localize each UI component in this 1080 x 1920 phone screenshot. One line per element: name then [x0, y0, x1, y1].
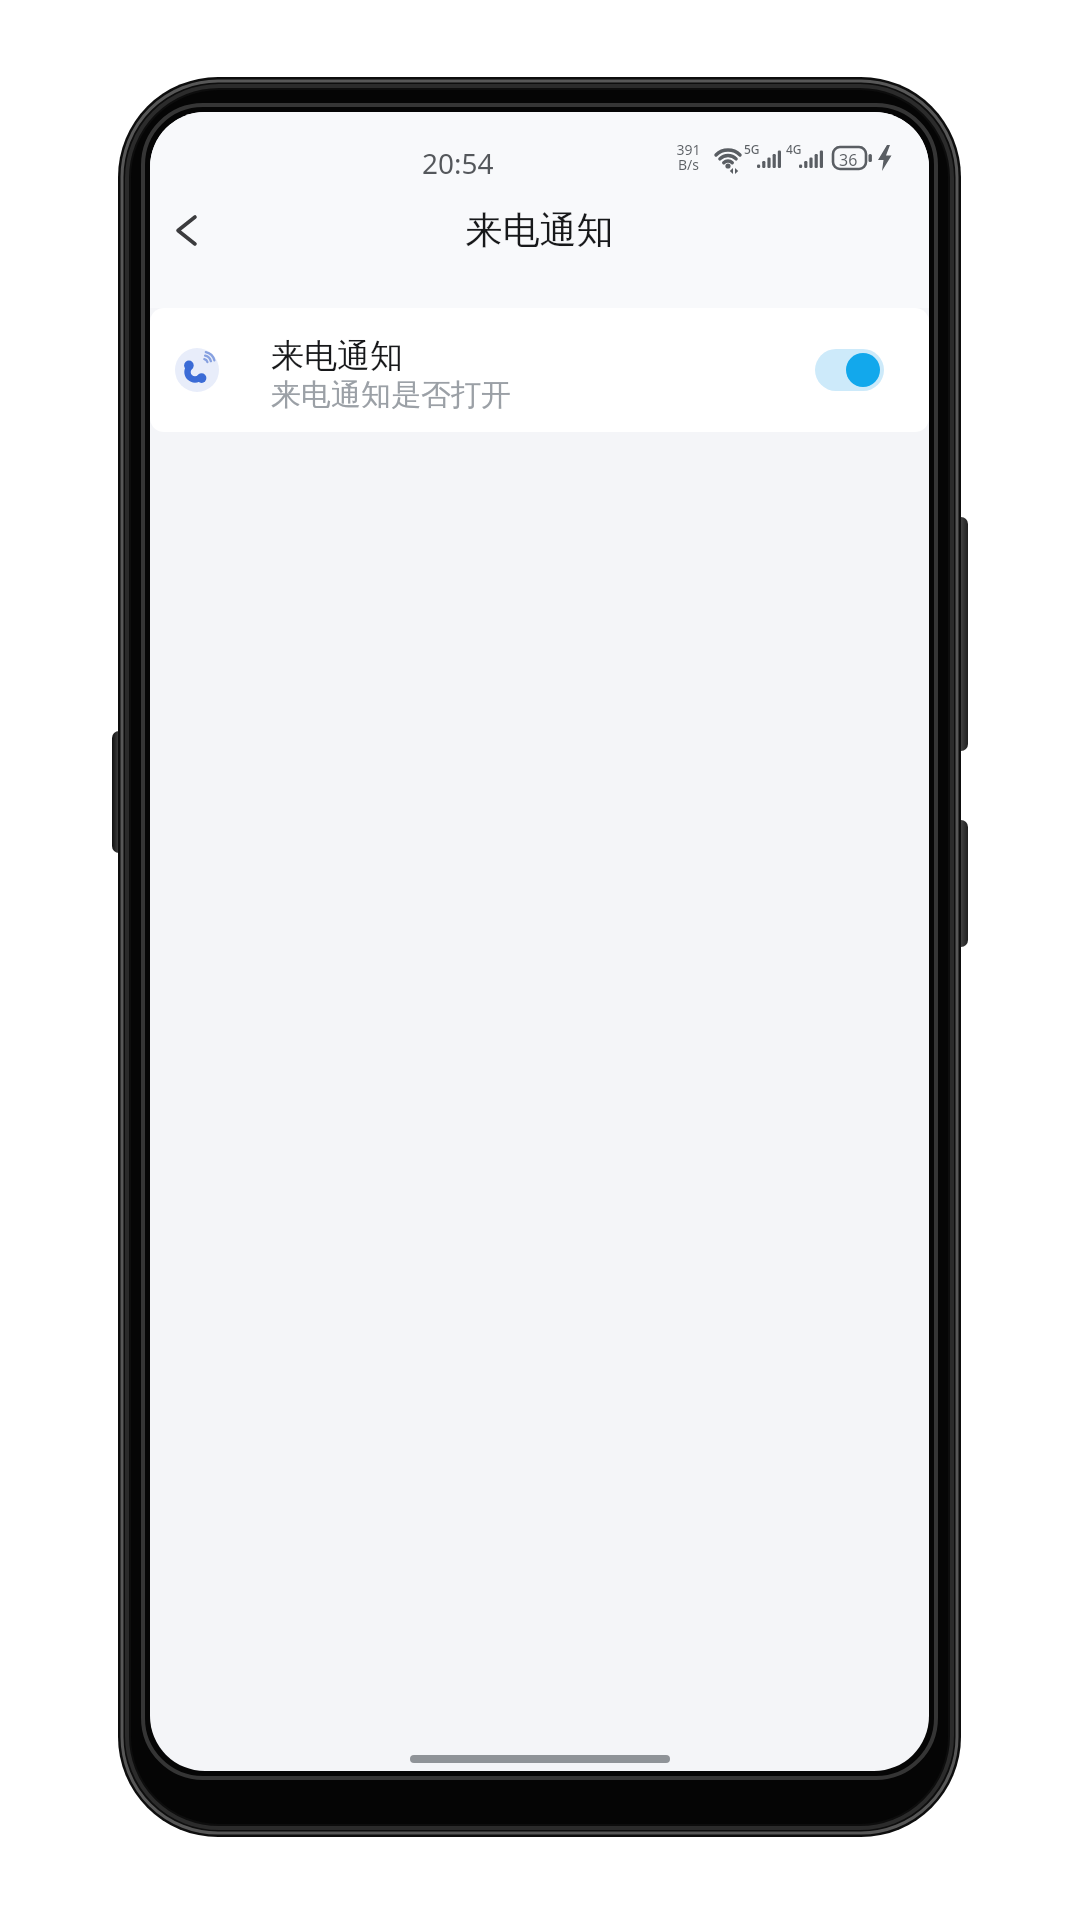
- staticText: 20:54: [422, 144, 494, 182]
- button[interactable]: 来电通知: [150, 308, 929, 432]
- staticText: 4G: [786, 141, 802, 157]
- button[interactable]: [815, 349, 884, 391]
- staticText: 来电通知: [271, 335, 403, 377]
- staticText: 来电通知: [150, 207, 929, 254]
- button[interactable]: [162, 212, 210, 252]
- staticText: 来电通知是否打开: [271, 376, 511, 414]
- staticText: 391 B/s: [676, 140, 701, 174]
- staticText: 36: [839, 149, 858, 171]
- staticText: 5G: [744, 141, 760, 157]
